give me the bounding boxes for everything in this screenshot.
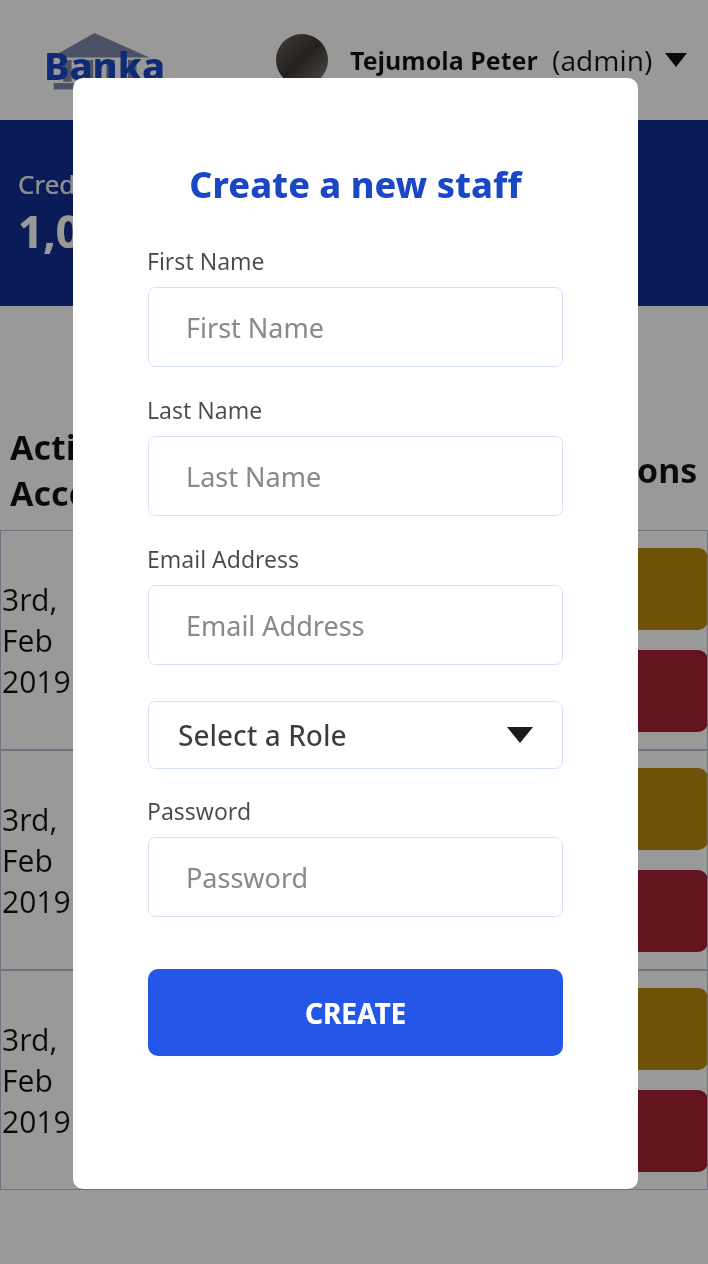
staticText: First Name xyxy=(186,309,324,346)
staticText: Credit xyxy=(18,166,92,201)
button[interactable]: Last Name xyxy=(148,436,563,516)
button[interactable]: Delete account xyxy=(540,1090,708,1172)
staticText: Actions xyxy=(571,447,698,493)
staticText: Create a new staff xyxy=(73,160,638,209)
staticText: Active xyxy=(98,840,268,881)
button[interactable]: Edit account xyxy=(540,548,708,630)
staticText: First Name xyxy=(147,245,265,276)
button[interactable]: 3rd, Feb 2019 xyxy=(0,970,708,1190)
button[interactable]: Edit account xyxy=(540,768,708,850)
button[interactable]: First Name xyxy=(148,287,563,367)
staticText: Tejumola Peter xyxy=(350,43,538,77)
button[interactable]: Banka home xyxy=(44,28,166,92)
staticText: Select a Role xyxy=(178,716,347,754)
staticText: 3rd, Feb 2019 xyxy=(2,799,96,922)
staticText: ₦ 5,000,000 xyxy=(270,819,530,901)
staticText: 3rd, Feb 2019 xyxy=(2,1019,96,1142)
button[interactable]: CREATE xyxy=(148,969,563,1056)
staticText: ₦ 5,000,000 xyxy=(270,599,530,681)
button[interactable]: Tejumola Peter xyxy=(276,34,687,86)
button[interactable]: Password xyxy=(148,837,563,917)
staticText: Email Address xyxy=(147,543,300,574)
button[interactable]: 3rd, Feb 2019 xyxy=(0,530,708,750)
staticText: Banka xyxy=(44,39,166,91)
staticText: Active xyxy=(98,620,268,661)
button[interactable]: Select a Role xyxy=(148,701,563,769)
staticText: ₦ 5,000,000 xyxy=(270,1039,530,1121)
staticText: Password xyxy=(147,795,252,826)
staticText: Activated Account information xyxy=(10,424,362,516)
staticText: Last Name xyxy=(186,458,322,495)
staticText: Email Address xyxy=(186,607,365,644)
staticText: 1,000,000 xyxy=(18,201,220,261)
staticText: 3rd, Feb 2019 xyxy=(2,579,96,702)
button[interactable]: 3rd, Feb 2019 xyxy=(0,750,708,970)
staticText: Last Name xyxy=(147,394,263,425)
button[interactable]: Delete account xyxy=(540,870,708,952)
staticText: CREATE xyxy=(305,994,407,1032)
staticText: (admin) xyxy=(552,41,653,79)
button[interactable]: Edit account xyxy=(540,988,708,1070)
button[interactable]: Delete account xyxy=(540,650,708,732)
button[interactable]: Email Address xyxy=(148,585,563,665)
staticText: Password xyxy=(186,859,309,896)
